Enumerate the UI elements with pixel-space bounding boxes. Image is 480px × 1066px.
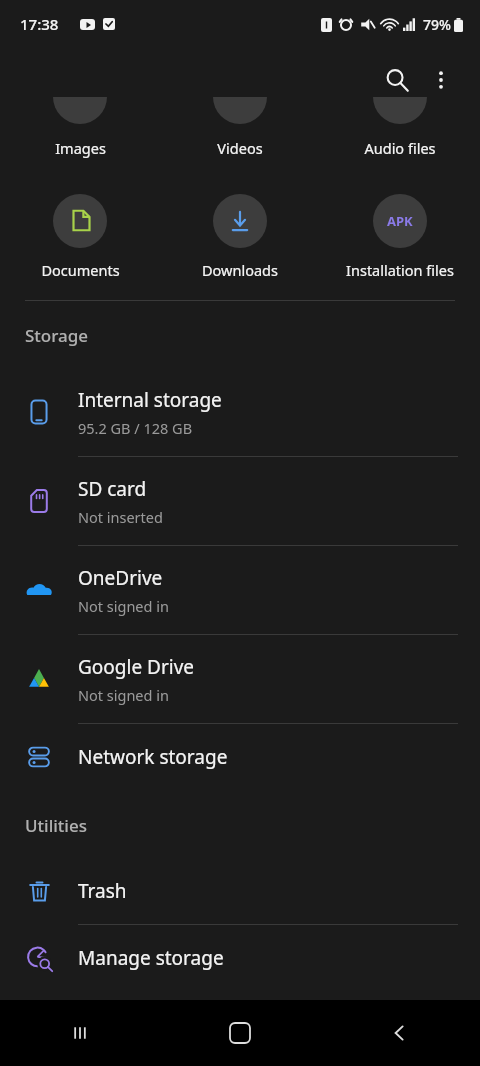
staticText: Not inserted [78,507,163,527]
staticText: Documents [41,260,120,280]
button[interactable]: Trash [0,858,480,924]
staticText: Utilities [25,814,87,837]
staticText: Audio files [364,138,436,158]
staticText: Downloads [202,260,278,280]
staticText: Internal storage [78,387,222,413]
staticText: Manage storage [78,945,224,971]
button[interactable]: Back [320,1000,480,1066]
staticText: Trash [78,878,127,904]
staticText: Installation files [346,260,454,280]
button[interactable]: More options [416,55,466,105]
staticText: APK [387,212,413,230]
staticText: Videos [217,138,263,158]
button[interactable]: Google Drive [0,635,480,723]
button[interactable]: SD card [0,457,480,545]
staticText: 17:38 [20,14,59,34]
button[interactable]: Downloads [160,194,320,280]
button[interactable]: Images [0,112,160,160]
button[interactable]: APK [320,194,480,280]
staticText: Images [55,138,106,158]
button[interactable]: OneDrive [0,546,480,634]
staticText: Network storage [78,744,228,770]
staticText: Storage [25,324,89,347]
button[interactable]: Home [160,1000,320,1066]
button[interactable]: Search [372,55,422,105]
staticText: Not signed in [78,685,169,705]
staticText: SD card [78,476,147,502]
button[interactable]: Audio files [320,112,480,160]
staticText: 95.2 GB / 128 GB [78,418,193,438]
button[interactable]: Manage storage [0,925,480,991]
staticText: OneDrive [78,565,163,591]
button[interactable]: Documents [0,194,160,280]
staticText: Google Drive [78,654,195,680]
button[interactable]: Internal storage [0,368,480,456]
button[interactable]: Network storage [0,724,480,790]
staticText: Not signed in [78,596,169,616]
staticText: 79% [423,15,451,34]
button[interactable]: Videos [160,112,320,160]
button[interactable]: Recents [0,1000,160,1066]
